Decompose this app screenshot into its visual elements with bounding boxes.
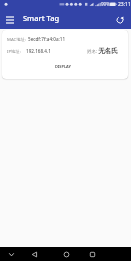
staticText: IP地址: [7,48,21,54]
button[interactable]: Home [59,247,73,261]
staticText: 无名氏 [98,47,118,55]
staticText: MAC地址: [7,36,27,42]
button[interactable]: Open navigation menu [3,13,16,26]
staticText: 姓名: [87,48,98,54]
staticText: 192.168.4.1 [26,48,51,54]
staticText: 23:11 [118,1,131,8]
button[interactable]: Refresh [113,13,127,27]
staticText: 99% [101,1,110,7]
button[interactable]: Recent apps [85,247,99,261]
staticText: DISPLAY [55,64,71,69]
button[interactable]: DISPLAY [48,60,78,72]
button[interactable]: Hide keyboard [4,247,18,261]
staticText: Smart Tag [23,13,60,23]
staticText: 5ecdf:7f:a4:0a:11 [28,36,66,42]
button[interactable]: Back [27,247,41,261]
